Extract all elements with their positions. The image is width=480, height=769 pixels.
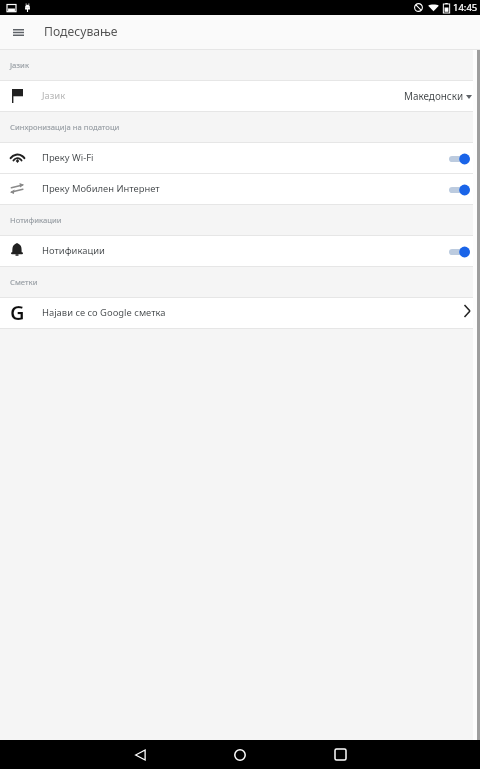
button[interactable]: Home bbox=[220, 740, 260, 769]
staticText: 14:45 bbox=[453, 1, 478, 14]
staticText: Подесување bbox=[44, 23, 118, 40]
staticText: Јазик bbox=[10, 60, 29, 70]
staticText: Македонски bbox=[404, 89, 464, 102]
staticText: Синхронизација на податоци bbox=[10, 122, 120, 132]
button[interactable]: Toggle bbox=[449, 180, 470, 200]
button[interactable]: Toggle bbox=[449, 242, 470, 262]
button[interactable]: Back bbox=[120, 740, 160, 769]
staticText: Преку Мобилен Интернет bbox=[42, 182, 160, 195]
staticText: Нотификации bbox=[42, 244, 105, 257]
button[interactable]: Open navigation menu bbox=[0, 15, 36, 50]
staticText: Најави се со Google сметка bbox=[42, 306, 166, 319]
button[interactable]: Toggle bbox=[449, 149, 470, 169]
staticText: Нотификации bbox=[10, 215, 62, 225]
button[interactable]: Recent apps bbox=[320, 740, 360, 769]
staticText: G bbox=[10, 299, 25, 325]
button[interactable]: G bbox=[0, 298, 480, 329]
button[interactable]: Преку Wi-Fi bbox=[0, 143, 480, 174]
staticText: Преку Wi-Fi bbox=[42, 151, 94, 164]
button[interactable]: Нотификации bbox=[0, 236, 480, 267]
staticText: Јазик bbox=[42, 89, 66, 102]
button[interactable]: Преку Мобилен Интернет bbox=[0, 174, 480, 205]
staticText: Сметки bbox=[10, 277, 38, 287]
button[interactable]: Јазик bbox=[0, 81, 480, 112]
